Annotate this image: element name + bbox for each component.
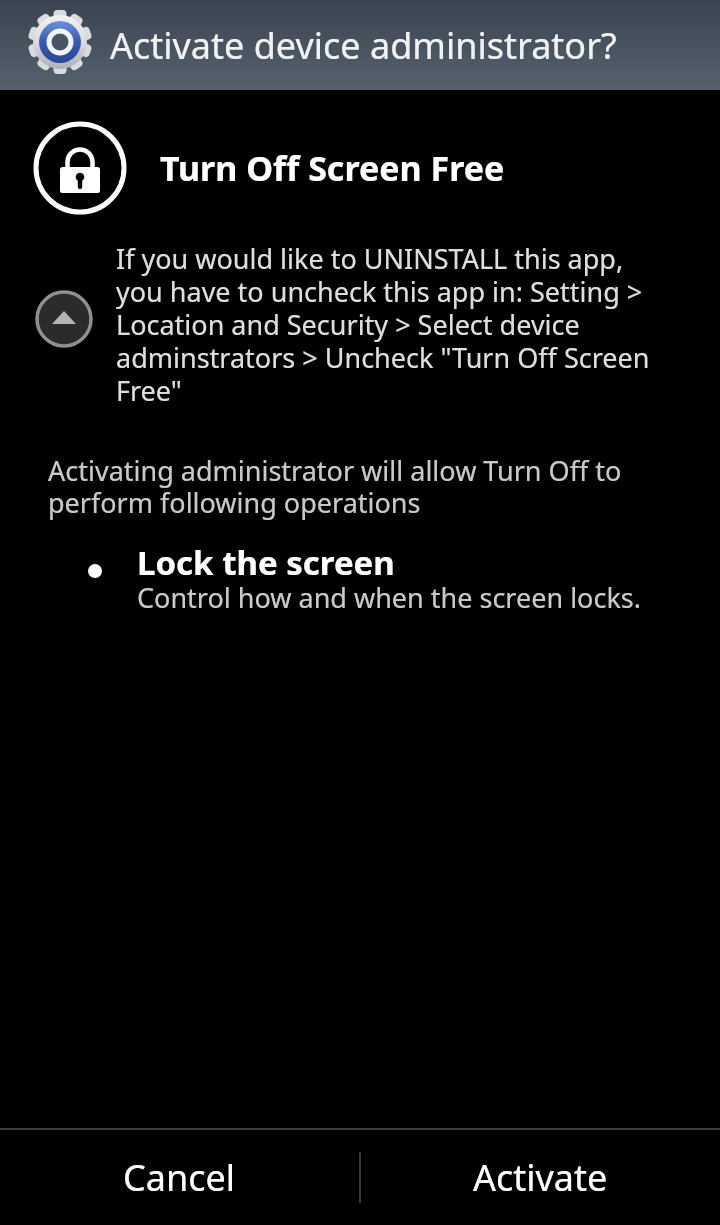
button[interactable]	[35, 290, 93, 348]
staticText: Cancel	[123, 1153, 236, 1202]
button[interactable]: Cancel	[0, 1130, 359, 1225]
staticText: Control how and when the screen locks.	[137, 579, 641, 616]
staticText: Activate	[473, 1153, 608, 1202]
staticText: Activating administrator will allow Turn…	[48, 452, 622, 521]
staticText: Lock the screen	[137, 540, 395, 579]
button[interactable]: Activate	[361, 1130, 720, 1225]
staticText: If you would like to UNINSTALL this app,…	[116, 240, 650, 409]
staticText: Turn Off Screen Free	[160, 145, 505, 191]
staticText: Activate device administrator?	[110, 21, 617, 70]
